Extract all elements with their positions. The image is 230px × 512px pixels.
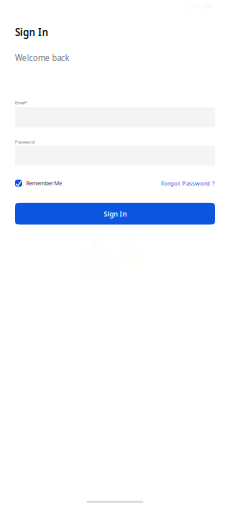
staticText: Welcome back: [15, 52, 69, 63]
button[interactable]: Forgot Password ?: [161, 179, 215, 187]
staticText: Sign In: [103, 209, 126, 218]
staticText: Forgot Password ?: [161, 179, 215, 187]
staticText: Email*: [15, 100, 27, 106]
button[interactable]: Sign In: [15, 203, 215, 224]
staticText: Password: [15, 139, 35, 145]
staticText: Sign In: [15, 25, 48, 39]
button[interactable]: Remember Me: [15, 179, 62, 187]
staticText: Remember Me: [26, 179, 62, 187]
